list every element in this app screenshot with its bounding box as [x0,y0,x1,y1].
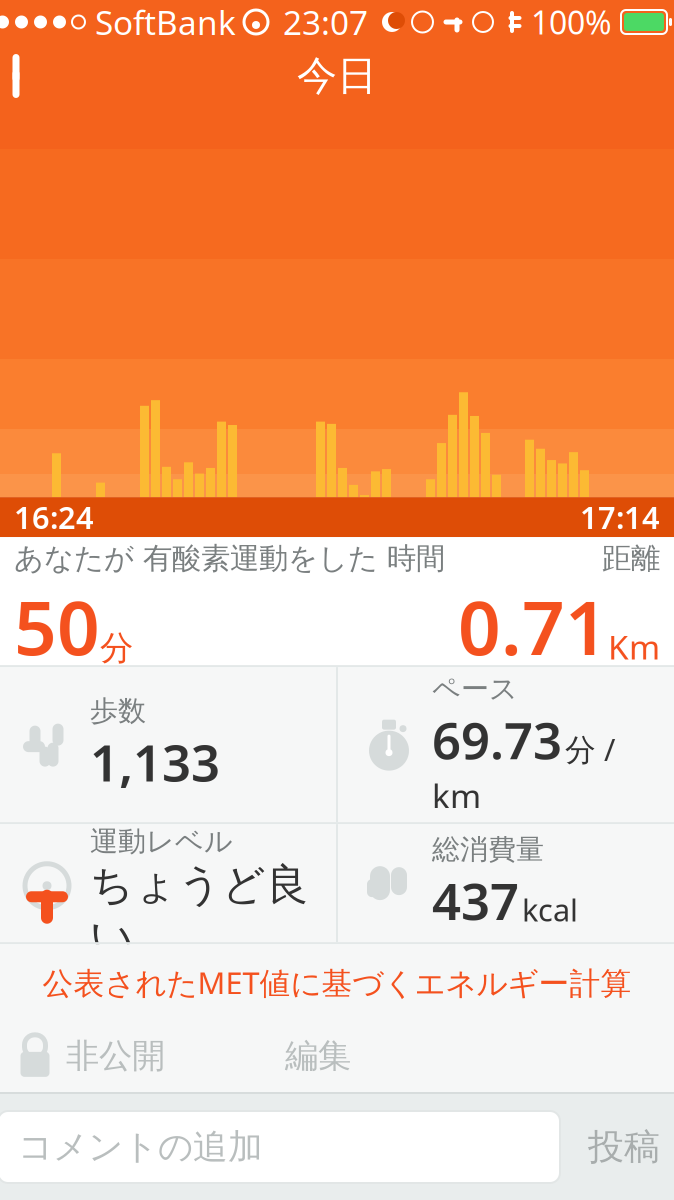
button[interactable]: Back [0,43,56,109]
staticText: SoftBank [95,0,236,44]
staticText: 公表されたMET値に基づくエネルギー計算 [42,962,631,1003]
button[interactable]: ペース [338,667,674,822]
button[interactable]: 編集 [285,1027,351,1084]
staticText: ちょうど良い [90,858,309,963]
staticText: 23:07 [283,0,368,44]
staticText: 総消費量 [432,832,544,867]
staticText: ペース [432,672,518,706]
staticText: 1,133 [90,728,220,795]
button[interactable]: 総消費量 [338,824,674,942]
staticText: 編集 [285,1035,351,1076]
button[interactable]: 運動レベル [0,824,336,942]
staticText: 50 [14,577,100,676]
button[interactable]: コメントの追加 [0,1111,560,1183]
button[interactable]: 公表されたMET値に基づくエネルギー計算 [0,944,674,1021]
staticText: 16:24 [14,497,94,537]
staticText: 歩数 [90,694,146,728]
staticText: 距離 [602,540,660,576]
staticText: Km [608,624,660,669]
staticText: 437 [432,867,519,934]
staticText: 投稿 [588,1125,660,1169]
staticText: 69.73 [432,706,562,773]
staticText: 0.71 [458,577,608,676]
button[interactable]: 歩数 [0,667,336,822]
staticText: 分 / [565,729,615,769]
staticText: 運動レベル [90,824,233,858]
staticText: あなたが 有酸素運動をした 時間 [14,540,445,576]
staticText: kcal [522,889,578,930]
staticText: 100% [531,1,612,43]
staticText: 今日 [297,51,377,100]
staticText: コメントの追加 [18,1126,263,1168]
staticText: 分 [100,628,133,669]
staticText: 17:14 [580,497,660,537]
button[interactable]: 投稿 [560,1111,674,1183]
button[interactable]: 非公開 [18,1027,165,1085]
staticText: 非公開 [66,1035,165,1076]
staticText: km [432,773,481,818]
